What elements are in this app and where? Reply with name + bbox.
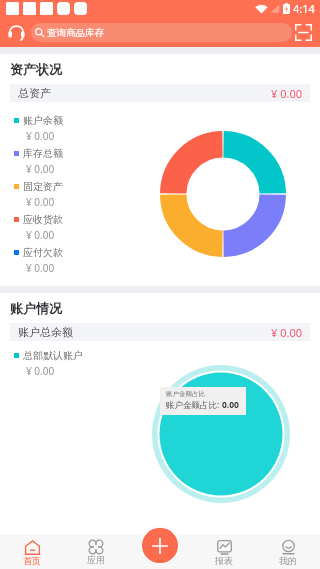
staticText: ¥ 0.00	[26, 261, 55, 275]
button[interactable]: 账户总余额	[10, 323, 310, 341]
button[interactable]: 新增	[142, 528, 178, 563]
button[interactable]: 查询商品库存	[31, 23, 292, 42]
button[interactable]: 报表	[192, 534, 256, 569]
staticText: 首页	[23, 555, 41, 566]
staticText: ¥ 0.00	[271, 325, 302, 340]
staticText: 账户金额占比:	[166, 399, 222, 411]
staticText: 应付欠款	[23, 246, 63, 259]
staticText: 我的	[279, 555, 297, 566]
staticText: ¥ 0.00	[26, 195, 55, 209]
staticText: 0.00	[222, 399, 239, 411]
staticText: 总部默认账户	[23, 349, 83, 362]
button[interactable]: 总资产	[10, 84, 310, 102]
staticText: 库存总额	[23, 147, 63, 160]
staticText: 报表	[215, 555, 233, 566]
staticText: 账户金额占比	[166, 390, 205, 398]
staticText: 查询商品库存	[47, 27, 104, 39]
staticText: 账户情况	[10, 300, 62, 316]
staticText: ¥ 0.00	[271, 86, 302, 101]
button[interactable]: 我的	[256, 534, 320, 569]
staticText: 应收货款	[23, 213, 63, 226]
staticText: ¥ 0.00	[26, 228, 55, 242]
staticText: 固定资产	[23, 180, 63, 193]
button[interactable]: 客服	[4, 20, 28, 44]
staticText: ¥ 0.00	[26, 129, 55, 143]
button[interactable]: 扫一扫	[292, 21, 314, 43]
staticText: 账户总余额	[18, 325, 73, 339]
staticText: ¥ 0.00	[26, 162, 55, 176]
staticText: 总资产	[18, 86, 51, 100]
button[interactable]: 首页	[0, 534, 64, 569]
staticText: ¥ 0.00	[26, 364, 55, 378]
staticText: 资产状况	[10, 61, 62, 77]
button[interactable]: 应用	[64, 534, 128, 569]
staticText: 4:14	[293, 1, 315, 16]
staticText: 账户余额	[23, 114, 63, 127]
staticText: 应用	[87, 554, 105, 565]
